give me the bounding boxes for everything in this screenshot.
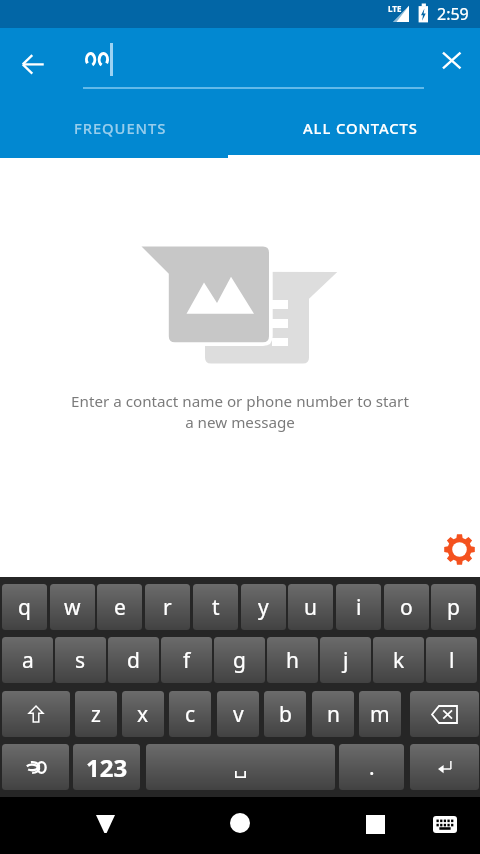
staticText: w <box>64 593 81 622</box>
button[interactable]: o <box>384 584 429 630</box>
button[interactable]: p <box>431 584 476 630</box>
button[interactable]: Back <box>9 36 57 84</box>
button[interactable]: Switch language <box>2 744 69 790</box>
staticText: c <box>185 700 196 729</box>
button[interactable]: Recent apps <box>351 799 399 847</box>
button[interactable]: y <box>241 584 286 630</box>
staticText: k <box>393 646 405 675</box>
staticText: f <box>183 646 191 675</box>
button[interactable]: x <box>122 691 164 737</box>
button[interactable]: m <box>359 691 401 737</box>
staticText: o <box>400 593 413 622</box>
staticText: 123 <box>86 751 128 784</box>
button[interactable]: g <box>214 637 265 683</box>
button[interactable]: d <box>108 637 159 683</box>
staticText: s <box>75 646 86 675</box>
button[interactable]: Back <box>81 799 129 847</box>
staticText: r <box>163 593 172 622</box>
button[interactable]: j <box>320 637 371 683</box>
staticText: l <box>449 646 455 675</box>
staticText: b <box>279 700 292 729</box>
staticText: p <box>447 593 460 622</box>
staticText: v <box>233 700 244 729</box>
button[interactable]: ALL CONTACTS <box>240 100 480 158</box>
button[interactable]: Clear text <box>430 36 474 80</box>
button[interactable]: l <box>426 637 477 683</box>
staticText: g <box>233 646 246 675</box>
button[interactable]: a <box>2 637 53 683</box>
staticText: Enter a contact name or phone number to … <box>71 391 409 433</box>
staticText: i <box>356 593 362 622</box>
button[interactable]: Enter <box>410 744 479 790</box>
button[interactable]: FREQUENTS <box>0 100 240 158</box>
staticText: h <box>286 646 299 675</box>
button[interactable]: Space <box>146 744 335 790</box>
button[interactable]: u <box>288 584 333 630</box>
button[interactable]: i <box>336 584 381 630</box>
button[interactable]: v <box>217 691 259 737</box>
button[interactable]: 123 <box>73 744 140 790</box>
staticText: u <box>304 593 317 622</box>
staticText: y <box>258 593 269 622</box>
staticText: q <box>18 593 31 622</box>
staticText: LTE <box>388 3 402 14</box>
button[interactable]: Delete <box>410 691 479 737</box>
button[interactable]: h <box>267 637 318 683</box>
button[interactable]: t <box>193 584 238 630</box>
staticText: z <box>91 700 101 729</box>
staticText: a <box>22 646 34 675</box>
staticText: m <box>370 700 390 729</box>
button[interactable]: b <box>264 691 306 737</box>
staticText: FREQUENTS <box>74 118 167 138</box>
button[interactable]: Change keyboard <box>421 799 469 847</box>
button[interactable]: z <box>75 691 117 737</box>
button[interactable]: s <box>55 637 106 683</box>
button[interactable]: Shift <box>2 691 70 737</box>
staticText: 2:59 <box>437 3 469 25</box>
button[interactable]: q <box>2 584 47 630</box>
button[interactable]: r <box>145 584 190 630</box>
button[interactable]: c <box>169 691 211 737</box>
button[interactable]: Settings <box>436 526 480 572</box>
button[interactable]: e <box>97 584 142 630</box>
button[interactable]: k <box>373 637 424 683</box>
staticText: d <box>127 646 140 675</box>
button[interactable]: n <box>312 691 354 737</box>
staticText: j <box>343 646 349 675</box>
staticText: t <box>212 593 220 622</box>
button[interactable]: . <box>339 744 404 790</box>
staticText: x <box>137 700 149 729</box>
staticText: . <box>369 753 375 782</box>
button[interactable]: Home <box>216 799 264 847</box>
button[interactable]: f <box>161 637 212 683</box>
staticText: ALL CONTACTS <box>303 118 418 138</box>
button[interactable]: w <box>50 584 95 630</box>
staticText: n <box>327 700 340 729</box>
staticText: e <box>114 593 126 622</box>
